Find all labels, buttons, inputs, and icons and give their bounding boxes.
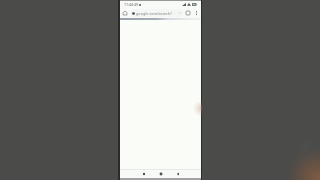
button[interactable]: Recent apps [135, 170, 152, 178]
button[interactable]: Back [169, 170, 186, 178]
button[interactable]: Home [152, 170, 169, 178]
staticText: 11:44:49 [124, 2, 138, 7]
button[interactable]: Home [121, 9, 129, 17]
button[interactable]: Switch tabs [184, 9, 192, 17]
button[interactable]: More options [192, 9, 200, 16]
staticText: google.com/search?q=shoes [136, 11, 179, 16]
button[interactable]: google.com/search?q=shoes [130, 9, 183, 17]
